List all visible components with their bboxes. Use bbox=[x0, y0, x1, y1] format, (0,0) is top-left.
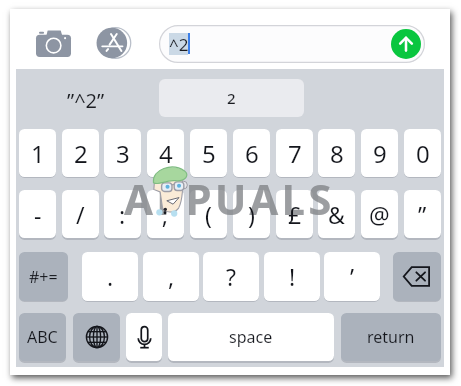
button[interactable]: App Store bbox=[96, 25, 132, 61]
staticText: 8 bbox=[330, 137, 344, 170]
staticText: APPUALS bbox=[124, 170, 335, 227]
staticText: - bbox=[34, 199, 42, 230]
staticText: 0 bbox=[416, 137, 430, 170]
button[interactable] bbox=[82, 252, 138, 301]
button[interactable] bbox=[19, 313, 66, 361]
staticText: ? bbox=[226, 261, 236, 292]
button[interactable] bbox=[318, 190, 355, 238]
button[interactable] bbox=[324, 252, 380, 301]
button[interactable] bbox=[276, 190, 313, 238]
button[interactable] bbox=[404, 190, 441, 238]
staticText: 4 bbox=[159, 137, 173, 170]
staticText: : bbox=[119, 199, 126, 230]
button[interactable] bbox=[159, 25, 425, 63]
button[interactable] bbox=[143, 252, 199, 301]
button[interactable] bbox=[104, 129, 141, 177]
staticText: @ bbox=[369, 199, 390, 230]
staticText: #+= bbox=[29, 266, 58, 288]
staticText: 5 bbox=[202, 137, 216, 170]
staticText: ( bbox=[205, 199, 212, 230]
staticText: ! bbox=[289, 261, 296, 292]
button[interactable] bbox=[361, 129, 398, 177]
button[interactable] bbox=[190, 190, 227, 238]
button[interactable] bbox=[318, 129, 355, 177]
staticText: . bbox=[107, 261, 114, 292]
button[interactable] bbox=[276, 129, 313, 177]
button[interactable] bbox=[147, 129, 184, 177]
staticText: 6 bbox=[245, 137, 259, 170]
button[interactable] bbox=[19, 129, 56, 177]
staticText: ^2 bbox=[169, 33, 189, 56]
staticText: return bbox=[367, 326, 415, 348]
button[interactable] bbox=[190, 129, 227, 177]
button[interactable]: Send bbox=[391, 29, 421, 59]
button[interactable] bbox=[203, 252, 259, 301]
button[interactable] bbox=[404, 129, 441, 177]
button[interactable] bbox=[264, 252, 320, 301]
button[interactable] bbox=[168, 313, 334, 361]
staticText: space bbox=[229, 326, 273, 348]
button[interactable] bbox=[62, 129, 99, 177]
staticText: 9 bbox=[373, 137, 387, 170]
button[interactable] bbox=[233, 190, 270, 238]
staticText: ”^2” bbox=[67, 87, 105, 114]
staticText: ; bbox=[162, 199, 169, 230]
button[interactable] bbox=[233, 129, 270, 177]
button[interactable]: Change keyboard bbox=[73, 313, 120, 361]
button[interactable]: Backspace bbox=[393, 252, 441, 301]
staticText: £ bbox=[288, 199, 302, 230]
button[interactable] bbox=[341, 313, 441, 361]
staticText: 3 bbox=[116, 137, 130, 170]
staticText: ’ bbox=[350, 261, 355, 292]
staticText: , bbox=[168, 261, 175, 292]
staticText: 2 bbox=[74, 137, 88, 170]
staticText: 7 bbox=[288, 137, 302, 170]
button[interactable] bbox=[62, 190, 99, 238]
staticText: 2 bbox=[227, 88, 236, 108]
staticText: 1 bbox=[31, 137, 45, 170]
button[interactable] bbox=[19, 252, 68, 301]
button[interactable]: Camera bbox=[36, 30, 71, 57]
staticText: ABC bbox=[27, 326, 58, 348]
button[interactable] bbox=[19, 190, 56, 238]
button[interactable]: Dictate bbox=[126, 313, 162, 361]
button[interactable]: 2 bbox=[159, 79, 304, 117]
button[interactable] bbox=[104, 190, 141, 238]
staticText: ” bbox=[418, 199, 427, 230]
staticText: ) bbox=[248, 199, 255, 230]
staticText: / bbox=[76, 199, 85, 230]
staticText: & bbox=[328, 199, 345, 230]
button[interactable] bbox=[361, 190, 398, 238]
button[interactable] bbox=[147, 190, 184, 238]
